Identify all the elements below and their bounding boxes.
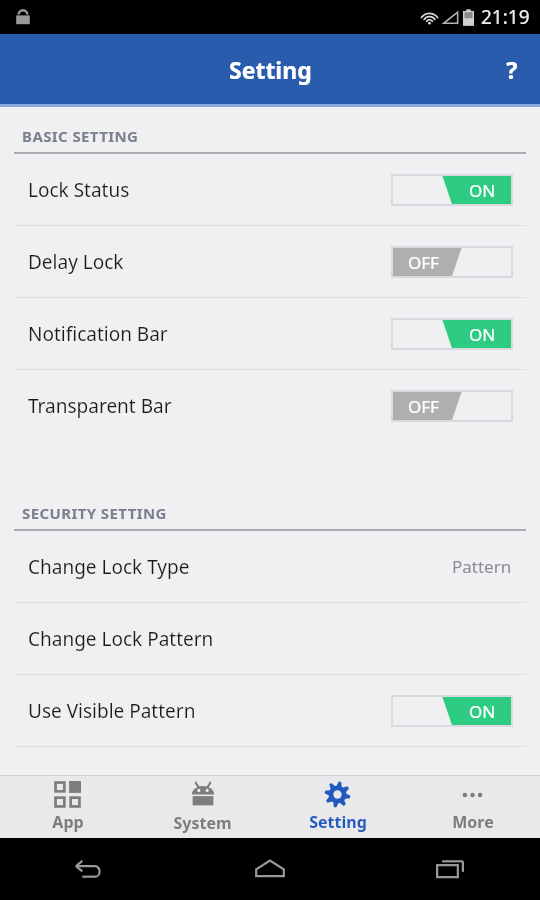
staticText: Change Lock Pattern bbox=[28, 626, 512, 652]
button[interactable]: Toggle on bbox=[392, 319, 512, 349]
staticText: More bbox=[452, 811, 494, 833]
staticText: OFF bbox=[408, 251, 439, 274]
button[interactable]: Toggle on bbox=[392, 175, 512, 205]
staticText: Pattern bbox=[452, 555, 512, 578]
staticText: Transparent Bar bbox=[28, 393, 392, 419]
staticText: Notification Bar bbox=[28, 321, 392, 347]
staticText: Setting bbox=[309, 811, 367, 833]
staticText: System bbox=[173, 812, 232, 834]
button[interactable]: Transparent Bar bbox=[0, 370, 540, 441]
staticText: SECURITY SETTING bbox=[22, 503, 167, 523]
button[interactable]: Help bbox=[484, 41, 540, 97]
staticText: Change Lock Type bbox=[28, 554, 452, 580]
staticText: 21:19 bbox=[481, 4, 530, 30]
staticText: Use Visible Pattern bbox=[28, 698, 392, 724]
button[interactable]: Change Lock Pattern bbox=[0, 603, 540, 674]
button[interactable]: Recent apps bbox=[426, 845, 474, 893]
button[interactable]: System bbox=[135, 776, 270, 838]
staticText: OFF bbox=[408, 395, 439, 418]
button[interactable]: Delay Lock bbox=[0, 226, 540, 297]
button[interactable]: Back bbox=[66, 845, 114, 893]
button[interactable]: More bbox=[405, 776, 540, 838]
staticText: ? bbox=[506, 53, 518, 86]
button[interactable]: Use Visible Pattern bbox=[0, 675, 540, 746]
button[interactable]: Toggle off bbox=[392, 391, 512, 421]
button[interactable]: Home bbox=[246, 845, 294, 893]
staticText: Delay Lock bbox=[28, 249, 392, 275]
staticText: Setting bbox=[229, 54, 312, 85]
button[interactable]: Change Lock Type bbox=[0, 531, 540, 602]
button[interactable]: App bbox=[0, 776, 135, 838]
button[interactable]: Setting bbox=[270, 776, 405, 838]
button[interactable]: Toggle off bbox=[392, 247, 512, 277]
button[interactable]: Lock Status bbox=[0, 154, 540, 225]
staticText: ON bbox=[469, 700, 496, 723]
button[interactable]: Notification Bar bbox=[0, 298, 540, 369]
button[interactable]: Toggle on bbox=[392, 696, 512, 726]
staticText: Lock Status bbox=[28, 177, 392, 203]
staticText: App bbox=[52, 811, 84, 833]
staticText: ON bbox=[469, 323, 496, 346]
staticText: ON bbox=[469, 179, 496, 202]
staticText: BASIC SETTING bbox=[22, 126, 139, 146]
